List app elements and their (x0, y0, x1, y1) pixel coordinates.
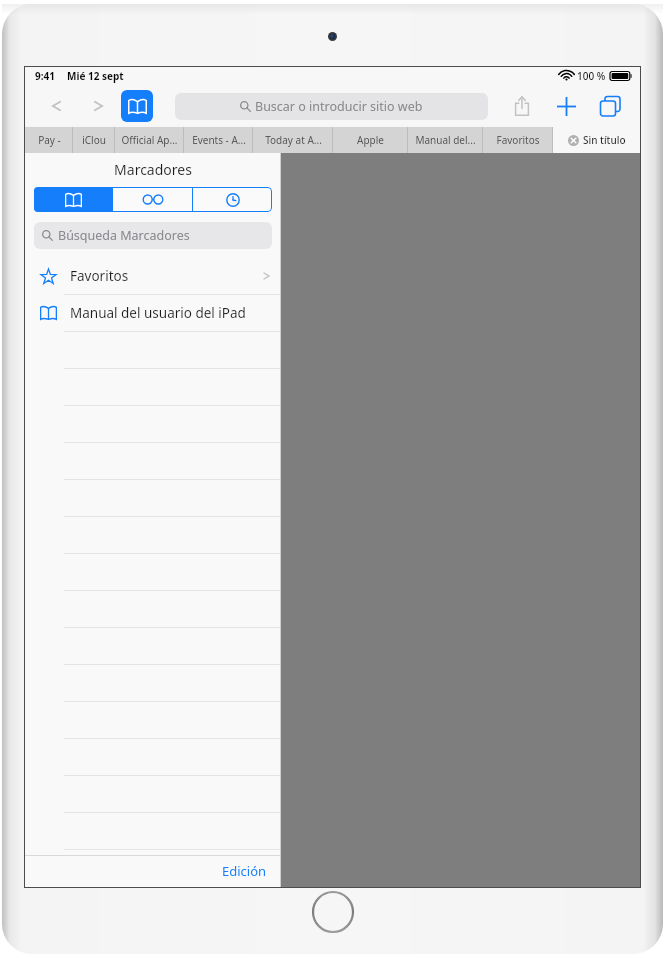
button[interactable]: Edición (214, 858, 275, 884)
button[interactable]: Adelante (81, 89, 115, 123)
button[interactable]: iClou (73, 127, 115, 153)
button[interactable]: Marcadores (34, 187, 112, 212)
button[interactable]: Pay - (25, 127, 73, 153)
button[interactable]: Apple (333, 127, 408, 153)
button[interactable]: Búsqueda Marcadores (34, 222, 272, 249)
staticText: Pay - (38, 133, 61, 147)
staticText: iClou (82, 133, 106, 147)
staticText: 100 % (577, 69, 606, 83)
button[interactable]: Historial (193, 187, 272, 212)
button[interactable]: Events - A... (184, 127, 253, 153)
button[interactable]: Today at A... (253, 127, 333, 153)
staticText: Official Ap... (121, 133, 178, 147)
button[interactable]: Home (311, 890, 355, 934)
staticText: Manual del usuario del iPad (70, 304, 271, 322)
staticText: Favoritos (70, 267, 262, 285)
button[interactable]: Favoritos (483, 127, 553, 153)
staticText: Marcadores (25, 160, 281, 179)
staticText: Favoritos (496, 133, 540, 147)
staticText: Búsqueda Marcadores (58, 227, 190, 244)
button[interactable]: Nueva pestaña (550, 90, 582, 122)
button[interactable]: Sin título (553, 127, 640, 153)
staticText: Buscar o introducir sitio web (255, 98, 423, 115)
button[interactable]: Manual del... (408, 127, 483, 153)
button[interactable]: Manual del usuario del iPad (25, 295, 281, 331)
button[interactable]: Official Ap... (115, 127, 184, 153)
button[interactable]: Marcadores (121, 90, 153, 122)
button[interactable]: Atrás (39, 89, 73, 123)
staticText: Manual del... (415, 133, 476, 147)
staticText: Sin título (583, 133, 626, 147)
staticText: Edición (222, 862, 267, 880)
staticText: Apple (357, 133, 384, 147)
button[interactable]: Pestañas (594, 90, 626, 122)
button[interactable]: Lista de lectura (113, 187, 192, 212)
staticText: Mié 12 sept (67, 69, 124, 83)
button[interactable]: Compartir (506, 90, 538, 122)
button[interactable]: Favoritos (25, 258, 281, 294)
button[interactable]: Buscar o introducir sitio web (175, 93, 488, 120)
staticText: 9:41 (35, 69, 55, 83)
staticText: Events - A... (192, 133, 246, 147)
staticText: Today at A... (265, 133, 322, 147)
